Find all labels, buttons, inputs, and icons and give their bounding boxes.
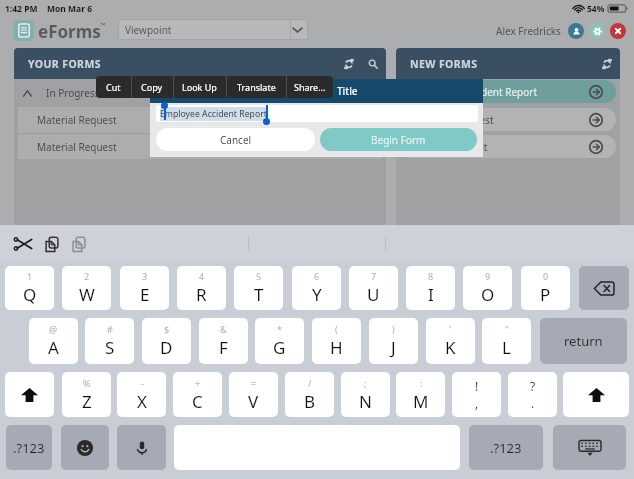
button[interactable]: Refresh xyxy=(339,54,358,73)
button[interactable]: Look Up xyxy=(173,76,226,98)
staticText: / xyxy=(308,377,312,389)
staticText: & xyxy=(220,323,227,335)
staticText: Z xyxy=(82,390,92,413)
staticText: ; xyxy=(364,377,367,389)
button[interactable]: = xyxy=(229,372,278,417)
button[interactable]: Emoji xyxy=(61,425,109,470)
staticText: H xyxy=(330,336,343,359)
staticText: I xyxy=(428,283,434,306)
staticText: Translate xyxy=(237,81,276,93)
button[interactable]: 0 xyxy=(521,266,570,310)
staticText: O xyxy=(481,283,495,306)
button[interactable]: Begin Form xyxy=(320,128,477,151)
staticText: W xyxy=(79,283,95,306)
button[interactable]: Sign out xyxy=(610,23,626,39)
staticText: ™ xyxy=(100,21,106,31)
button[interactable]: Backspace xyxy=(579,266,629,310)
button[interactable]: Safety Checklist xyxy=(400,135,616,158)
staticText: F xyxy=(219,336,228,359)
button[interactable]: Employee Accident Report xyxy=(400,80,616,103)
button[interactable]: In Progress xyxy=(14,79,386,107)
button[interactable]: & xyxy=(199,318,248,364)
button[interactable]: ' xyxy=(426,318,475,364)
button[interactable]: 8 xyxy=(406,266,455,310)
button[interactable]: Copy xyxy=(131,76,173,98)
button[interactable]: / xyxy=(285,372,334,417)
button[interactable]: @ xyxy=(29,318,78,364)
button[interactable]: # xyxy=(85,318,134,364)
button[interactable]: Dictation xyxy=(117,425,166,470)
button[interactable]: ? xyxy=(508,372,557,417)
button[interactable]: Profile xyxy=(568,23,584,39)
button[interactable]: * xyxy=(255,318,304,364)
staticText: 7 xyxy=(371,270,377,282)
staticText: .?123 xyxy=(490,439,522,457)
staticText: 9 xyxy=(485,270,491,282)
button[interactable]: Material Request xyxy=(18,107,382,133)
button[interactable]: " xyxy=(482,318,531,364)
staticText: .?123 xyxy=(13,439,45,457)
staticText: = xyxy=(251,377,257,389)
button[interactable]: Settings xyxy=(589,23,605,39)
staticText: - xyxy=(141,377,144,389)
staticText: $ xyxy=(164,323,170,335)
button[interactable]: - xyxy=(117,372,166,417)
staticText: 0 xyxy=(543,270,549,282)
button[interactable]: Numbers xyxy=(6,425,52,470)
button[interactable]: Viewpoint xyxy=(118,19,308,40)
staticText: + xyxy=(195,377,201,389)
button[interactable]: Copy xyxy=(38,231,66,257)
staticText: : xyxy=(420,377,423,389)
button[interactable]: Material Request xyxy=(400,108,616,131)
button[interactable]: Shift xyxy=(563,372,629,417)
button[interactable]: 4 xyxy=(177,266,226,310)
button[interactable]: Shift xyxy=(5,372,54,417)
button[interactable]: 9 xyxy=(463,266,512,310)
button[interactable]: Return xyxy=(540,318,627,364)
button[interactable]: eForms xyxy=(13,20,34,41)
button[interactable]: Refresh xyxy=(597,54,616,73)
button[interactable]: : xyxy=(396,372,445,417)
staticText: S xyxy=(105,336,115,359)
button[interactable]: Cut xyxy=(9,231,37,257)
button[interactable]: Numbers xyxy=(469,425,543,470)
staticText: L xyxy=(502,336,511,359)
staticText: eForms xyxy=(38,20,101,43)
button[interactable]: Search xyxy=(363,54,382,73)
button[interactable]: 5 xyxy=(234,266,283,310)
staticText: Copy xyxy=(141,81,163,93)
button[interactable]: + xyxy=(173,372,222,417)
button[interactable]: 6 xyxy=(292,266,341,310)
staticText: G xyxy=(273,336,286,359)
button[interactable]: ; xyxy=(341,372,390,417)
button[interactable]: Cut xyxy=(96,76,131,98)
staticText: Title xyxy=(337,84,358,98)
staticText: Viewpoint xyxy=(125,23,172,37)
staticText: , xyxy=(475,395,479,411)
button[interactable]: Paste xyxy=(65,231,93,257)
staticText: 3 xyxy=(142,270,148,282)
button[interactable]: ) xyxy=(369,318,418,364)
button[interactable]: Material Request xyxy=(18,134,382,159)
staticText: 6 xyxy=(314,270,320,282)
button[interactable]: 3 xyxy=(120,266,169,310)
button[interactable]: 7 xyxy=(349,266,398,310)
staticText: 8 xyxy=(428,270,434,282)
staticText: * xyxy=(277,323,282,335)
button[interactable]: ! xyxy=(452,372,501,417)
button[interactable]: $ xyxy=(142,318,191,364)
staticText: 4 xyxy=(199,270,205,282)
button[interactable]: Translate xyxy=(226,76,286,98)
staticText: . xyxy=(531,395,535,411)
button[interactable]: Share... xyxy=(286,76,333,98)
staticText: return xyxy=(564,332,603,350)
button[interactable]: 1 xyxy=(5,266,54,310)
button[interactable]: % xyxy=(62,372,111,417)
button[interactable]: Cancel xyxy=(156,128,315,151)
staticText: B xyxy=(304,390,316,413)
button[interactable]: Hide keyboard xyxy=(553,425,626,470)
button[interactable]: ( xyxy=(312,318,361,364)
staticText: Y xyxy=(312,283,322,306)
button[interactable]: 2 xyxy=(62,266,111,310)
